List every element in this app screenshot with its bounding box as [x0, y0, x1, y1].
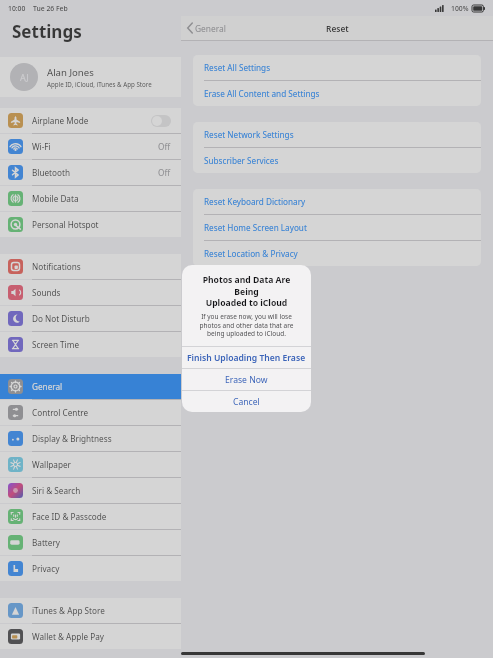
- button[interactable]: Reset Network Settings: [193, 122, 481, 147]
- button[interactable]: Control Centre: [0, 400, 181, 425]
- staticText: Mobile Data: [32, 193, 171, 204]
- staticText: Face ID & Passcode: [32, 511, 171, 522]
- staticText: Siri & Search: [32, 485, 171, 496]
- staticText: Cancel: [233, 396, 260, 408]
- button[interactable]: Sounds: [0, 280, 181, 305]
- staticText: Off: [158, 167, 171, 178]
- button[interactable]: Reset Location & Privacy: [193, 241, 481, 266]
- button[interactable]: Mobile Data: [0, 186, 181, 211]
- staticText: If you erase now, you will lose photos a…: [191, 312, 302, 337]
- staticText: Airplane Mode: [32, 115, 151, 126]
- staticText: Display & Brightness: [32, 433, 171, 444]
- button[interactable]: Reset Home Screen Layout: [193, 215, 481, 240]
- staticText: Wallpaper: [32, 459, 171, 470]
- staticText: Screen Time: [32, 339, 171, 350]
- staticText: Sounds: [32, 287, 171, 298]
- staticText: Erase Now: [225, 374, 268, 386]
- staticText: General: [195, 23, 226, 34]
- button[interactable]: Cancel: [182, 391, 311, 412]
- button[interactable]: General: [0, 374, 181, 399]
- staticText: Battery: [32, 537, 171, 548]
- staticText: Tue 26 Feb: [33, 4, 68, 13]
- button[interactable]: Bluetooth: [0, 160, 181, 185]
- button[interactable]: Siri & Search: [0, 478, 181, 503]
- staticText: Notifications: [32, 261, 171, 272]
- button[interactable]: Airplane Mode: [0, 108, 181, 133]
- button[interactable]: Screen Time: [0, 332, 181, 357]
- button[interactable]: Erase All Content and Settings: [193, 81, 481, 106]
- button[interactable]: Wallet & Apple Pay: [0, 624, 181, 649]
- staticText: Wi-Fi: [32, 141, 158, 152]
- staticText: Reset All Settings: [204, 62, 271, 73]
- staticText: Alan Jones: [47, 66, 94, 79]
- staticText: AJ: [20, 71, 29, 83]
- button[interactable]: Battery: [0, 530, 181, 555]
- staticText: Wallet & Apple Pay: [32, 631, 171, 642]
- button[interactable]: Face ID & Passcode: [0, 504, 181, 529]
- staticText: 100%: [451, 4, 469, 13]
- button[interactable]: Wi-Fi: [0, 134, 181, 159]
- staticText: Off: [158, 141, 171, 152]
- staticText: Control Centre: [32, 407, 171, 418]
- button[interactable]: Do Not Disturb: [0, 306, 181, 331]
- button[interactable]: Reset Keyboard Dictionary: [193, 189, 481, 214]
- staticText: iTunes & App Store: [32, 605, 171, 616]
- staticText: Settings: [12, 20, 82, 43]
- staticText: Reset: [326, 23, 349, 34]
- button[interactable]: Finish Uploading Then Erase: [182, 347, 311, 368]
- staticText: Privacy: [32, 563, 171, 574]
- button[interactable]: Personal Hotspot: [0, 212, 181, 237]
- staticText: Reset Network Settings: [204, 129, 294, 140]
- button[interactable]: Privacy: [0, 556, 181, 581]
- button[interactable]: Wallpaper: [0, 452, 181, 477]
- button[interactable]: Airplane Mode toggle: [151, 115, 171, 127]
- staticText: Subscriber Services: [204, 155, 279, 166]
- button[interactable]: Notifications: [0, 254, 181, 279]
- staticText: Apple ID, iCloud, iTunes & App Store: [47, 80, 152, 88]
- staticText: Reset Home Screen Layout: [204, 222, 307, 233]
- button[interactable]: iTunes & App Store: [0, 598, 181, 623]
- staticText: Bluetooth: [32, 167, 158, 178]
- button[interactable]: Reset All Settings: [193, 55, 481, 80]
- staticText: Erase All Content and Settings: [204, 88, 320, 99]
- button[interactable]: Erase Now: [182, 369, 311, 390]
- button[interactable]: General: [187, 16, 226, 40]
- staticText: Personal Hotspot: [32, 219, 171, 230]
- staticText: Photos and Data Are Being Uploaded to iC…: [191, 274, 302, 308]
- button[interactable]: Subscriber Services: [193, 148, 481, 173]
- staticText: Reset Keyboard Dictionary: [204, 196, 306, 207]
- staticText: General: [32, 381, 171, 392]
- button[interactable]: AJ: [0, 57, 181, 97]
- staticText: Do Not Disturb: [32, 313, 171, 324]
- button[interactable]: Display & Brightness: [0, 426, 181, 451]
- staticText: Reset Location & Privacy: [204, 248, 298, 259]
- staticText: Finish Uploading Then Erase: [187, 352, 306, 364]
- staticText: 10:00: [8, 4, 26, 13]
